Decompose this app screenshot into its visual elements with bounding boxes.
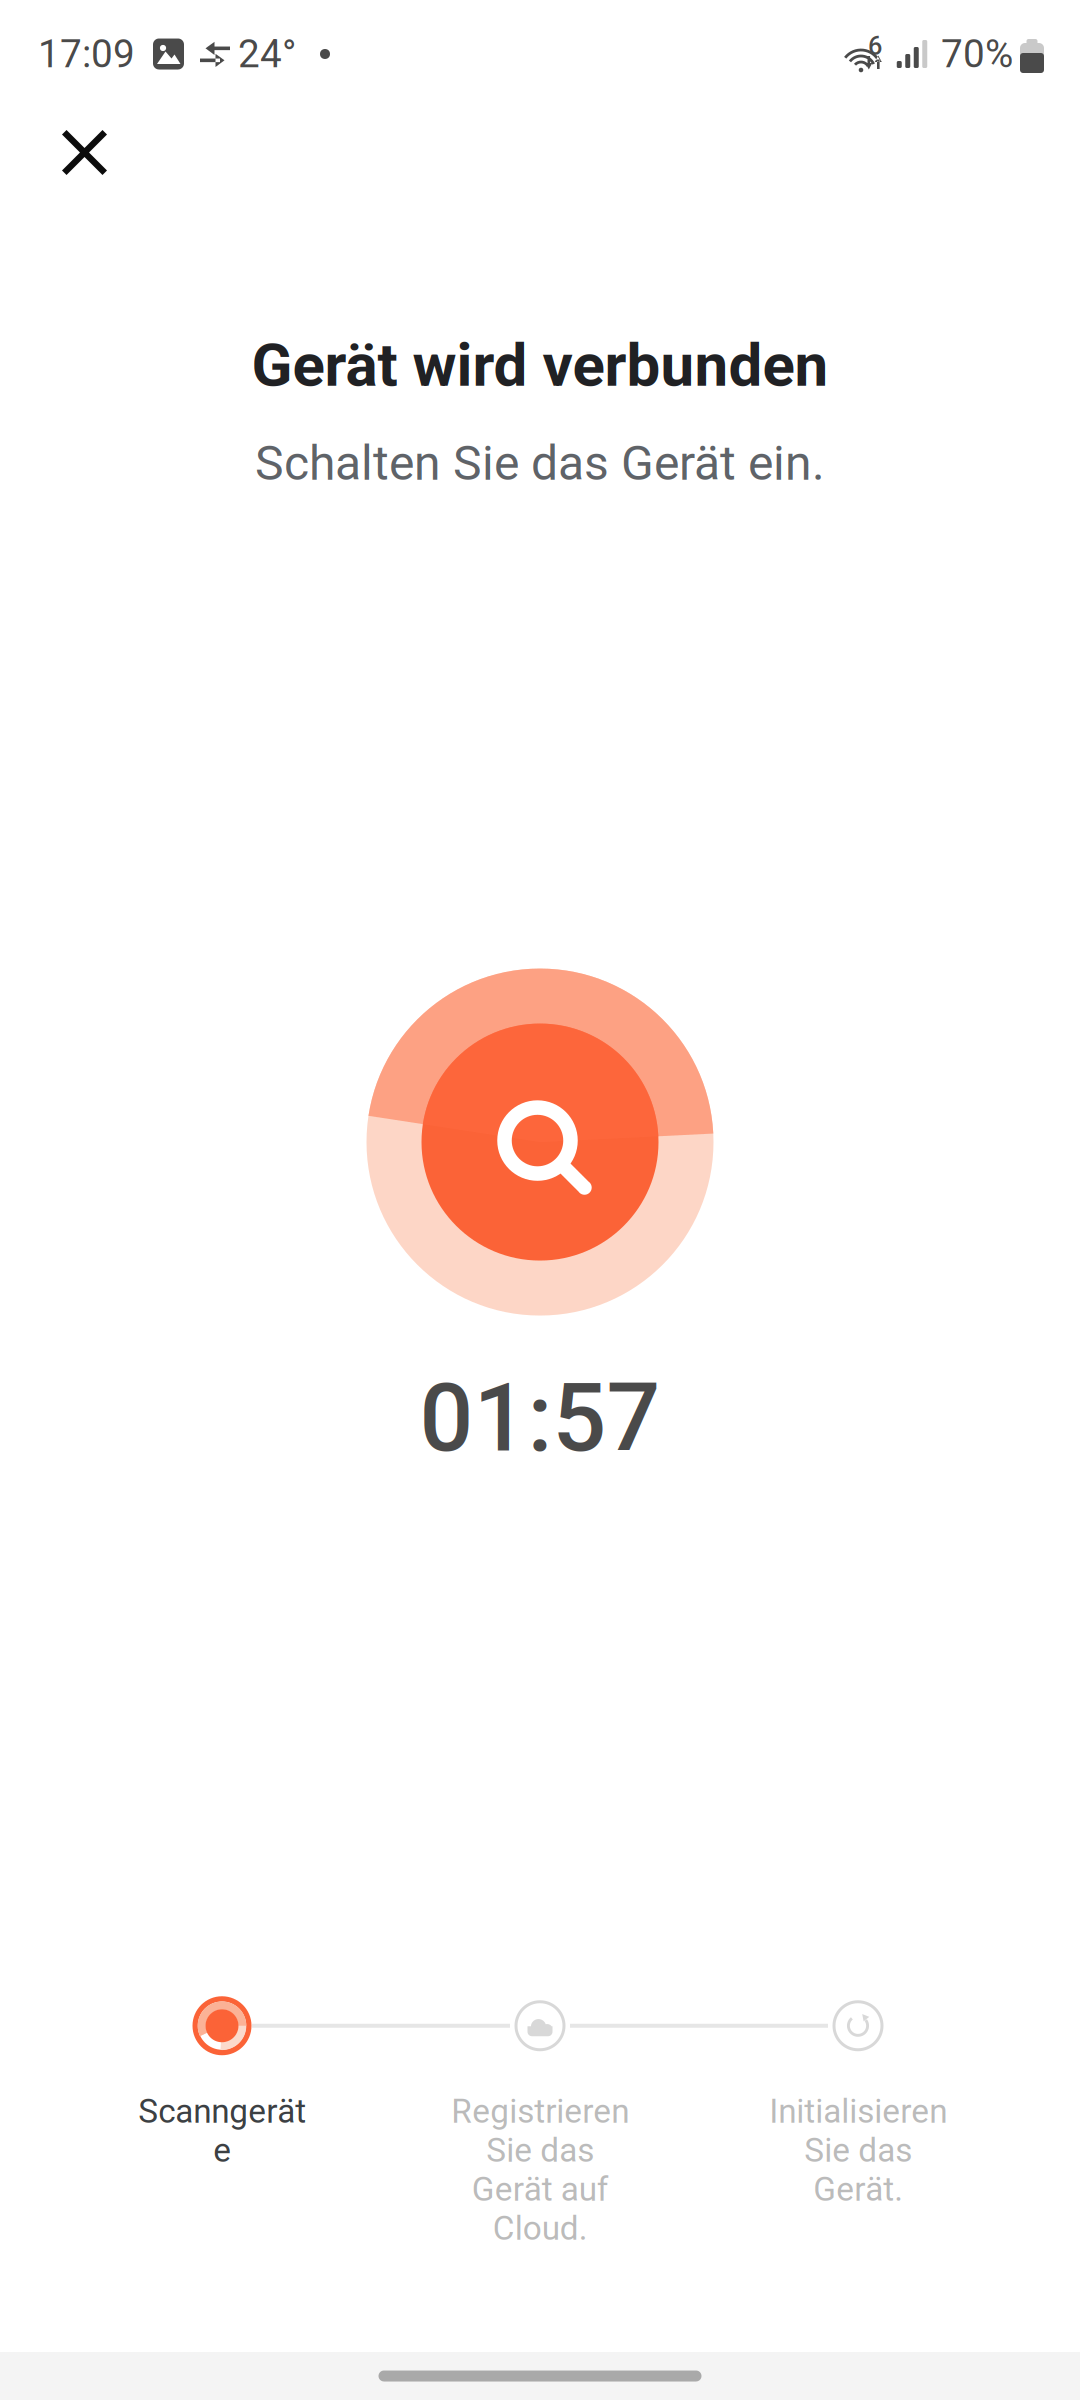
- button[interactable]: Close: [40, 108, 129, 197]
- staticText: 70%: [941, 31, 1013, 77]
- staticText: 24°: [238, 31, 296, 77]
- staticText: 01:57: [419, 1363, 660, 1473]
- staticText: 6: [868, 31, 882, 61]
- staticText: Registrieren Sie das Gerät auf Cloud.: [451, 2092, 629, 2248]
- staticText: Schalten Sie das Gerät ein.: [255, 435, 825, 491]
- staticText: 17:09: [38, 31, 135, 77]
- staticText: Scanngerät e: [138, 2092, 306, 2170]
- staticText: Gerät wird verbunden: [251, 330, 828, 400]
- staticText: Initialisieren Sie das Gerät.: [769, 2092, 947, 2209]
